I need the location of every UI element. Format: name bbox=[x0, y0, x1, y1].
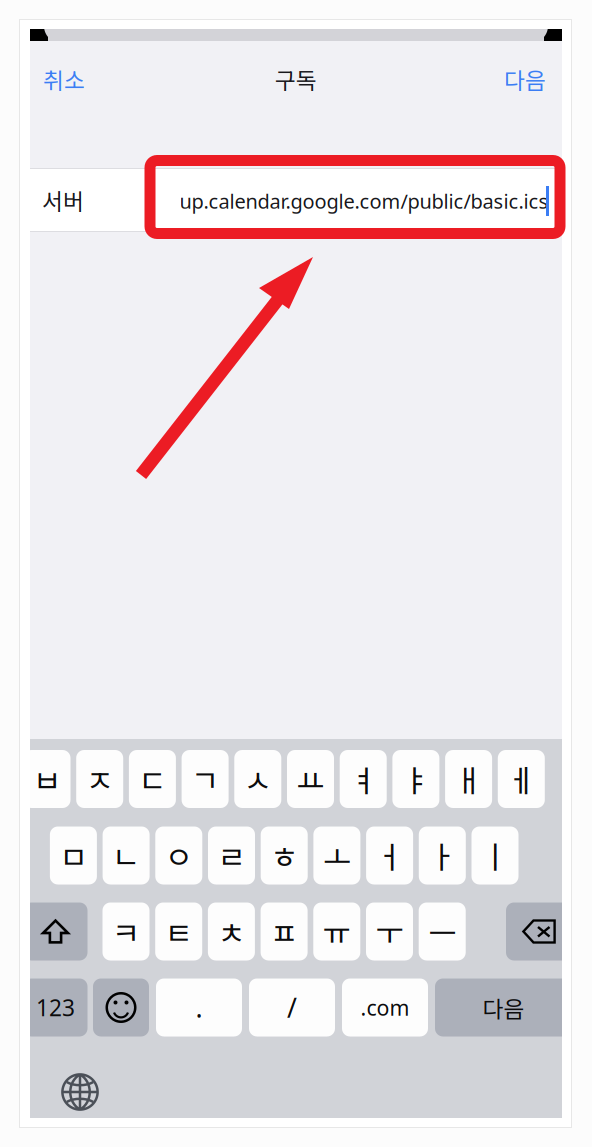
button[interactable]: ㅐ bbox=[445, 750, 492, 808]
button[interactable]: 다음 bbox=[435, 978, 572, 1036]
staticText: ㅋ bbox=[112, 909, 140, 954]
staticText: ㅗ bbox=[323, 833, 351, 878]
staticText: ㅓ bbox=[376, 833, 404, 878]
button[interactable]: ㅏ bbox=[419, 826, 466, 884]
button[interactable]: Emoji bbox=[93, 978, 149, 1036]
button[interactable]: ㅑ bbox=[392, 750, 439, 808]
button[interactable]: ㅂ bbox=[23, 750, 70, 808]
staticText: . bbox=[195, 990, 202, 1025]
staticText: ㅈ bbox=[86, 757, 114, 801]
button[interactable]: ㄴ bbox=[103, 826, 150, 884]
button[interactable]: ㅡ bbox=[419, 902, 466, 960]
button[interactable]: ㅋ bbox=[102, 902, 149, 960]
staticText: 취소 bbox=[43, 63, 85, 95]
staticText: 다음 bbox=[482, 991, 524, 1024]
staticText: ㅅ bbox=[244, 757, 272, 801]
staticText: ㅏ bbox=[428, 833, 456, 878]
staticText: ㅡ bbox=[428, 909, 456, 954]
button[interactable]: ㅠ bbox=[313, 902, 360, 960]
button[interactable]: ㅇ bbox=[155, 826, 202, 884]
staticText: / bbox=[287, 990, 297, 1025]
staticText: 서버 bbox=[42, 184, 84, 216]
button[interactable]: ㅜ bbox=[366, 902, 413, 960]
staticText: ㄴ bbox=[112, 833, 140, 878]
staticText: ㅌ bbox=[165, 909, 193, 954]
button[interactable]: ㅌ bbox=[155, 902, 202, 960]
button[interactable]: ㅊ bbox=[208, 902, 255, 960]
button[interactable]: ㅔ bbox=[498, 750, 545, 808]
button[interactable]: ㅈ bbox=[76, 750, 123, 808]
staticText: ㄷ bbox=[138, 757, 166, 801]
staticText: ㄱ bbox=[191, 757, 219, 801]
button[interactable]: ㅛ bbox=[287, 750, 334, 808]
button[interactable]: ㅅ bbox=[234, 750, 281, 808]
button[interactable]: ㅁ bbox=[50, 826, 97, 884]
staticText: ㅍ bbox=[270, 909, 298, 954]
staticText: ㅛ bbox=[296, 757, 324, 801]
staticText: ㅇ bbox=[165, 833, 193, 878]
staticText: 다음 bbox=[504, 63, 546, 95]
staticText: ㅁ bbox=[59, 833, 87, 878]
button[interactable]: Delete bbox=[506, 902, 572, 960]
staticText: ㅠ bbox=[323, 909, 351, 954]
button[interactable]: 취소 bbox=[32, 59, 96, 99]
button[interactable]: ㄱ bbox=[182, 750, 229, 808]
button[interactable]: ㄷ bbox=[129, 750, 176, 808]
button[interactable]: / bbox=[249, 978, 335, 1036]
staticText: ㅕ bbox=[349, 757, 377, 801]
staticText: ㅔ bbox=[507, 757, 535, 801]
staticText: ㅣ bbox=[481, 833, 509, 878]
staticText: ㅑ bbox=[402, 757, 430, 801]
button[interactable]: . bbox=[156, 978, 242, 1036]
button[interactable]: ㅓ bbox=[366, 826, 413, 884]
button[interactable]: ㅕ bbox=[340, 750, 387, 808]
staticText: up.calendar.google.com/public/basic.ics bbox=[179, 188, 548, 214]
staticText: ㅜ bbox=[375, 909, 403, 954]
button[interactable]: Switch keyboard bbox=[57, 1069, 103, 1115]
button[interactable]: ㅎ bbox=[261, 826, 308, 884]
button[interactable]: ㅗ bbox=[313, 826, 360, 884]
staticText: ㅎ bbox=[270, 833, 298, 878]
button[interactable]: ㄹ bbox=[208, 826, 255, 884]
staticText: ㅐ bbox=[455, 757, 483, 801]
staticText: ㄹ bbox=[217, 833, 245, 878]
button[interactable]: ㅣ bbox=[471, 826, 518, 884]
staticText: 123 bbox=[36, 992, 75, 1022]
staticText: ㅂ bbox=[33, 757, 61, 801]
staticText: 구독 bbox=[275, 63, 317, 95]
button[interactable]: 123 bbox=[23, 978, 87, 1036]
staticText: ㅊ bbox=[217, 909, 245, 954]
button[interactable]: 다음 bbox=[493, 59, 557, 99]
button[interactable]: Shift bbox=[23, 902, 87, 960]
button[interactable]: ㅍ bbox=[261, 902, 308, 960]
button[interactable]: .com bbox=[342, 978, 428, 1036]
staticText: .com bbox=[360, 993, 409, 1022]
